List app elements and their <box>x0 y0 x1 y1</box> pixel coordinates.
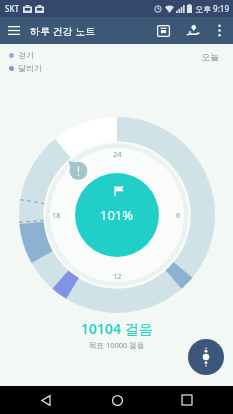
staticText: 101% <box>100 206 134 224</box>
staticText: 18 <box>52 210 61 220</box>
button[interactable]: Calendar <box>150 17 176 44</box>
staticText: 오늘 <box>201 51 219 62</box>
staticText: 오후 9:19 <box>195 3 229 14</box>
staticText: 걷기 <box>18 50 34 60</box>
button[interactable]: Home <box>93 386 141 414</box>
button[interactable]: More actions <box>188 339 224 375</box>
button[interactable]: Recent apps <box>163 386 211 414</box>
button[interactable]: Map location <box>180 17 206 44</box>
staticText: 6 <box>176 210 181 220</box>
staticText: 달리기 <box>18 63 42 73</box>
staticText: 목표 10000 걸음 <box>89 340 145 350</box>
button[interactable]: Alert <box>68 160 88 180</box>
staticText: 24 <box>113 149 122 159</box>
button[interactable]: More options <box>209 17 230 44</box>
staticText: SKT <box>5 3 19 14</box>
staticText: 하루 건강 노트 <box>30 24 96 38</box>
button[interactable]: Navigation menu <box>1 17 27 44</box>
staticText: 10104 걸음 <box>81 319 153 338</box>
button[interactable]: 오늘 <box>199 50 221 63</box>
button[interactable]: Back <box>22 386 70 414</box>
staticText: 12 <box>113 271 122 281</box>
